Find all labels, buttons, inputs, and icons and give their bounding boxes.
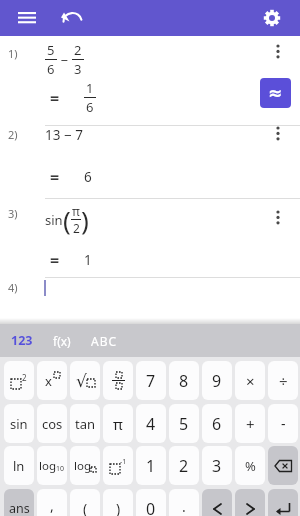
staticText: ABC [91,333,118,349]
staticText: , [50,496,54,515]
button[interactable]: + [235,404,265,443]
staticText: 6 [84,168,92,186]
button[interactable]: log [70,446,100,485]
staticText: ) [81,202,89,237]
staticText: 3 [74,60,82,78]
button[interactable]: tan [70,404,100,443]
button[interactable]: -1 [103,446,133,485]
button[interactable] [273,44,283,60]
button[interactable]: cos [37,404,67,443]
staticText: 2 [22,372,27,383]
staticText: √ [76,371,87,391]
button[interactable]: 4 [136,404,166,443]
button[interactable] [103,361,133,400]
staticText: 1) [8,46,18,61]
staticText: 6 [86,98,94,116]
button[interactable] [61,10,84,26]
button[interactable]: 123 [2,324,42,357]
button[interactable]: log [37,446,67,485]
staticText: ≈ [268,83,283,103]
button[interactable]: 0 [136,489,166,516]
button[interactable]: 5 [45,41,84,78]
button[interactable]: 1 [136,446,166,485]
button[interactable] [273,210,283,226]
button[interactable]: ) [103,489,133,516]
staticText: π [72,203,80,219]
staticText: cos [42,415,63,433]
staticText: % [245,457,256,475]
staticText: ) [116,499,121,516]
staticText: 3 [212,455,222,477]
button[interactable]: 7 [136,361,166,400]
button[interactable] [268,489,298,516]
button[interactable]: 5 [169,404,199,443]
button[interactable]: × [235,361,265,400]
staticText: 4) [8,280,18,295]
staticText: 5 [179,413,189,435]
button[interactable]: - [268,404,298,443]
staticText: 2 [179,455,189,477]
button[interactable]: 3 [202,446,232,485]
staticText: 10 [56,464,65,474]
staticText: 1 [146,455,156,477]
button[interactable]: % [235,446,265,485]
staticText: 4 [146,413,156,435]
staticText: log [39,458,56,474]
button[interactable]: π [103,404,133,443]
staticText: sin [10,415,28,433]
staticText: sin [45,211,63,229]
staticText: ÷ [279,371,288,391]
staticText: 123 [11,332,33,349]
button[interactable]: x [37,361,67,400]
staticText: tan [75,415,96,433]
staticText: x [45,372,52,389]
staticText: 9 [212,370,222,392]
button[interactable]: 9 [202,361,232,400]
button[interactable]: , [37,489,67,516]
staticText: − [57,51,72,69]
button[interactable] [18,12,36,24]
staticText: = [50,166,60,188]
staticText: - [281,414,286,433]
button[interactable]: ÷ [268,361,298,400]
staticText: 1 [84,251,92,269]
button[interactable] [202,489,232,516]
staticText: ( [83,499,88,516]
button[interactable]: sin [45,202,89,237]
button[interactable]: sin [4,404,34,443]
staticText: 1 [86,79,94,97]
staticText: ln [13,457,25,475]
staticText: + [246,414,255,434]
button[interactable]: ( [70,489,100,516]
staticText: 8 [179,370,189,392]
staticText: 7 [146,370,156,392]
staticText: 3) [8,206,18,221]
staticText: 2 [73,220,80,236]
button[interactable]: ans [4,489,34,516]
staticText: 6 [212,413,222,435]
staticText: π [113,414,123,434]
button[interactable] [268,446,298,485]
staticText: -1 [120,457,127,467]
button[interactable]: 2 [4,361,34,400]
button[interactable]: . [169,489,199,516]
staticText: 0 [146,498,156,516]
button[interactable]: 13 − 7 [45,126,83,144]
button[interactable]: ln [4,446,34,485]
button[interactable]: ABC [82,324,126,357]
button[interactable]: 8 [169,361,199,400]
staticText: × [246,371,255,391]
staticText: = [50,249,60,271]
button[interactable]: 6 [202,404,232,443]
button[interactable]: ≈ [260,78,291,108]
button[interactable]: f(x) [42,324,82,357]
button[interactable] [273,126,283,142]
staticText: f(x) [53,333,71,349]
button[interactable] [261,7,283,29]
staticText: = [50,87,60,109]
staticText: ( [63,202,71,237]
button[interactable]: √ [70,361,100,400]
button[interactable]: 2 [169,446,199,485]
button[interactable] [235,489,265,516]
staticText: 6 [47,60,55,78]
